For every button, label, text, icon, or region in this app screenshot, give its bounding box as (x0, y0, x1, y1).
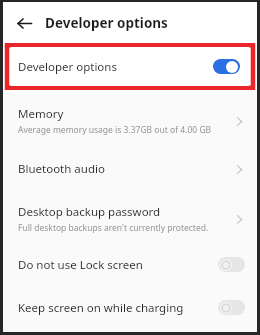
staticText: Bluetooth audio (18, 161, 225, 177)
other: Open (231, 161, 247, 177)
other: Open (231, 113, 247, 129)
button[interactable]: Desktop backup password (3, 195, 257, 243)
button[interactable]: Back (11, 10, 37, 36)
staticText: Full desktop backups aren't currently pr… (18, 222, 209, 234)
staticText: Keep screen on while charging (18, 300, 212, 316)
button[interactable]: Toggle off (218, 300, 245, 315)
button[interactable]: Toggle off (218, 257, 245, 272)
staticText: Do not use Lock screen (18, 257, 212, 273)
staticText: Developer options (45, 14, 168, 32)
button[interactable]: Developer options (11, 47, 249, 86)
button[interactable]: Bluetooth audio (3, 143, 257, 195)
button[interactable]: Do not use Lock screen (3, 243, 257, 286)
staticText: Desktop backup password (18, 204, 161, 220)
other: Open (231, 211, 247, 227)
staticText: Memory (18, 106, 64, 122)
button[interactable]: Keep screen on while charging (3, 286, 257, 329)
button[interactable]: Developer options on (213, 59, 240, 74)
staticText: Developer options (18, 59, 213, 75)
button[interactable]: Memory (3, 99, 257, 143)
staticText: Average memory usage is 3.37GB out of 4.… (18, 124, 212, 136)
